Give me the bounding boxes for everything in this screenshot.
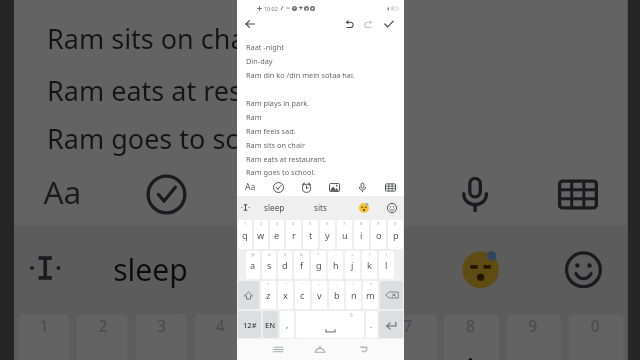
button[interactable]: :	[312, 281, 327, 309]
button[interactable]: sleep	[254, 196, 295, 219]
button[interactable]: Backspace	[380, 281, 403, 309]
button[interactable]: ;	[329, 281, 344, 309]
button[interactable]: EN	[263, 311, 278, 338]
button[interactable]: 4	[194, 314, 249, 360]
staticText: n	[351, 289, 357, 302]
button[interactable]: sits	[234, 226, 403, 310]
button[interactable]: sits	[297, 196, 343, 219]
button[interactable]: Done	[379, 16, 399, 31]
button[interactable]: Recents	[266, 339, 291, 360]
button[interactable]: Voice note	[348, 178, 376, 196]
button[interactable]: Space	[296, 311, 364, 338]
button[interactable]: Enter	[379, 311, 403, 338]
staticText: e	[274, 229, 280, 242]
button[interactable]: (	[362, 251, 377, 279]
staticText: 4	[216, 318, 227, 340]
button[interactable]: #	[262, 251, 276, 279]
button[interactable]: Undo	[339, 16, 359, 31]
button[interactable]: Redo	[359, 16, 379, 31]
button[interactable]: &	[294, 251, 309, 279]
staticText: Ram eats at restaurant.	[246, 154, 327, 164]
button[interactable]: Text cursor	[14, 226, 76, 310]
button[interactable]: Checklist	[264, 178, 292, 196]
staticText: +	[351, 252, 354, 258]
staticText: 8	[466, 318, 477, 340]
staticText: f	[300, 259, 304, 272]
button[interactable]: )	[379, 251, 394, 279]
staticText: 7	[403, 318, 414, 340]
staticText: Ram plays in park.	[246, 98, 310, 108]
button[interactable]: Table	[376, 178, 404, 196]
button[interactable]: *	[261, 281, 276, 309]
button[interactable]: Sleepy emoji	[425, 226, 536, 310]
button[interactable]: !	[346, 281, 361, 309]
button[interactable]: Format text	[14, 160, 113, 226]
button[interactable]: 8	[354, 220, 369, 249]
button[interactable]: Sleepy emoji	[349, 196, 379, 219]
button[interactable]: .	[366, 311, 377, 338]
button[interactable]: @	[246, 251, 260, 279]
button[interactable]: 5	[256, 314, 312, 360]
staticText: 10:02	[264, 5, 278, 12]
button[interactable]: Emoji keyboard	[379, 196, 404, 219]
button[interactable]: sleep	[76, 226, 227, 310]
button[interactable]: 12#	[238, 311, 261, 338]
button[interactable]: Back	[237, 16, 263, 31]
button[interactable]: Insert image	[320, 178, 348, 196]
button[interactable]: ,	[280, 311, 294, 338]
staticText: Ram goes to school.	[47, 119, 304, 156]
button[interactable]: Text cursor	[237, 196, 254, 219]
button[interactable]: "	[278, 281, 293, 309]
button[interactable]: ?	[363, 281, 378, 309]
button[interactable]: Emoji keyboard	[536, 226, 627, 310]
button[interactable]: -	[328, 251, 343, 279]
button[interactable]: 0	[388, 220, 403, 249]
staticText: x	[283, 289, 288, 302]
button[interactable]: 9	[371, 220, 386, 249]
button[interactable]: 6	[320, 220, 335, 249]
staticText: *	[317, 252, 320, 258]
staticText: ;	[336, 282, 338, 288]
button[interactable]: Voice note	[422, 160, 525, 226]
button[interactable]: Reminder	[216, 160, 319, 226]
staticText: :	[319, 282, 321, 288]
staticText: Aa	[245, 181, 256, 193]
button[interactable]: Back	[351, 339, 377, 360]
staticText: EN	[265, 320, 276, 330]
button[interactable]: 3	[270, 220, 284, 249]
button[interactable]: 2	[254, 220, 268, 249]
button[interactable]: Insert image	[319, 160, 422, 226]
button[interactable]: 6	[319, 314, 374, 360]
staticText: k	[367, 259, 372, 272]
staticText: h	[333, 259, 339, 272]
staticText: 4	[292, 221, 295, 227]
button[interactable]: 7	[381, 314, 436, 360]
staticText: 5	[309, 221, 312, 227]
button[interactable]: *	[311, 251, 326, 279]
button[interactable]: 5	[303, 220, 318, 249]
button[interactable]: Format text	[237, 178, 264, 196]
button[interactable]: Table	[525, 160, 628, 226]
button[interactable]: 1	[238, 220, 252, 249]
button[interactable]: $	[278, 251, 292, 279]
button[interactable]: 7	[337, 220, 352, 249]
button[interactable]: '	[295, 281, 310, 309]
button[interactable]: Shift	[238, 281, 259, 309]
button[interactable]: Checklist	[113, 160, 216, 226]
button[interactable]: +	[345, 251, 360, 279]
button[interactable]: Reminder	[292, 178, 320, 196]
button[interactable]: 8	[444, 314, 499, 360]
staticText: Ram feels sad.	[246, 126, 296, 136]
other: Backspace	[385, 290, 399, 300]
button[interactable]: 4	[286, 220, 301, 249]
button[interactable]: Home	[307, 339, 333, 360]
staticText: 1	[40, 318, 51, 340]
staticText: -	[335, 252, 337, 258]
